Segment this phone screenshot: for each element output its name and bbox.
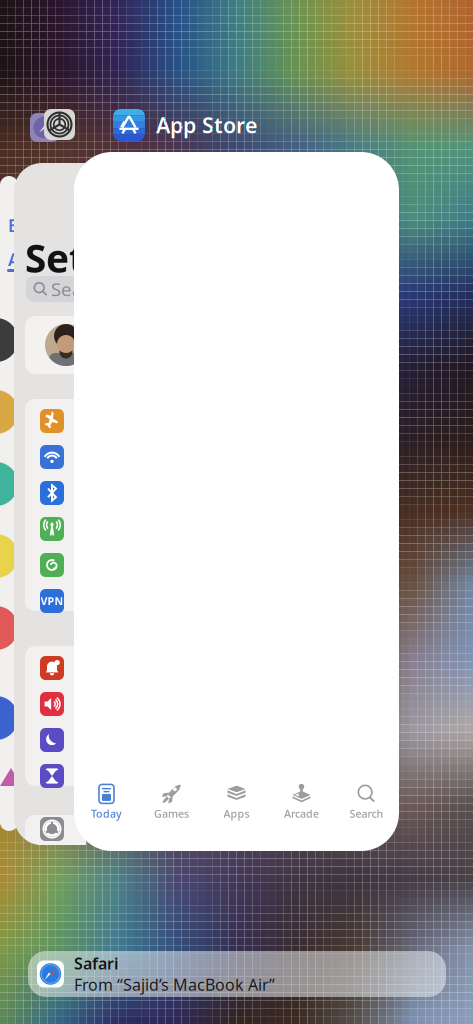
button[interactable]: Today	[74, 782, 139, 822]
button[interactable]: Apps	[204, 782, 269, 822]
staticText: Arcade	[284, 806, 319, 821]
staticText: E	[8, 214, 18, 237]
staticText: App Store	[156, 111, 257, 139]
staticText: From “Sajid’s MacBook Air”	[74, 974, 275, 995]
button[interactable]: Games	[139, 782, 204, 822]
staticText: Safari	[74, 953, 119, 974]
staticText: Search	[51, 277, 110, 301]
button[interactable]: Search	[334, 782, 399, 822]
staticText: Search	[349, 806, 383, 821]
staticText: Today	[91, 806, 122, 821]
staticText: Games	[154, 806, 189, 821]
staticText: VPN	[40, 594, 63, 608]
staticText: A	[8, 248, 20, 271]
staticText: Apps	[223, 806, 249, 821]
button[interactable]: Arcade	[269, 782, 334, 822]
button[interactable]: Safari	[28, 951, 446, 997]
staticText: Settings	[25, 232, 183, 283]
